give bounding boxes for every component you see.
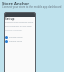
staticText: Shopify store: [9, 36, 23, 39]
staticText: Store Anchor: [2, 1, 30, 7]
button[interactable]: Top app bar: [4, 12, 36, 17]
staticText: Connect your existing store account: [5, 21, 36, 24]
button[interactable]: Square store: [4, 39, 36, 43]
staticText: Set up: [5, 17, 15, 21]
staticText: Choose a provider: [5, 29, 23, 32]
staticText: Connect your store to the mobile app das…: [2, 5, 62, 9]
staticText: Sync products in real time: [5, 25, 32, 28]
staticText: Square store: [9, 40, 23, 43]
button[interactable]: Shopify store: [4, 35, 36, 39]
